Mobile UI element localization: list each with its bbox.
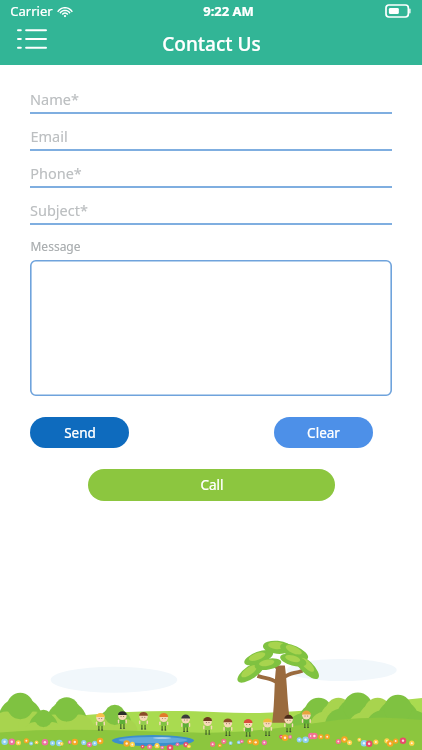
button[interactable]: Send: [30, 417, 129, 448]
button[interactable]: Subject*: [30, 196, 392, 225]
staticText: 9:22 AM: [203, 2, 254, 20]
button[interactable]: Phone*: [30, 159, 392, 188]
staticText: Email: [30, 126, 68, 146]
button[interactable]: Name*: [30, 85, 392, 114]
button[interactable]: [30, 260, 392, 396]
staticText: Message: [30, 238, 81, 254]
staticText: Name*: [30, 89, 79, 109]
staticText: Subject*: [30, 200, 88, 220]
button[interactable]: Menu: [10, 20, 54, 58]
staticText: Send: [64, 424, 96, 442]
staticText: Clear: [307, 424, 340, 442]
staticText: Carrier: [10, 2, 53, 20]
staticText: Contact Us: [162, 31, 261, 57]
staticText: Phone*: [30, 163, 82, 183]
staticText: Call: [200, 476, 224, 494]
button[interactable]: Call: [88, 469, 335, 501]
button[interactable]: Email: [30, 122, 392, 151]
button[interactable]: Clear: [274, 417, 373, 448]
